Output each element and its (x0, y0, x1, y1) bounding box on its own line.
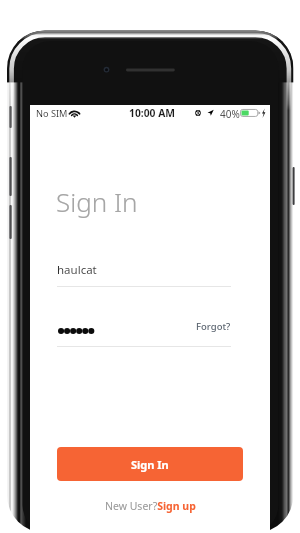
staticText: Sign In (56, 184, 138, 219)
staticText: New User?Sign up (105, 499, 196, 513)
staticText: 40% (220, 107, 240, 121)
button[interactable]: New User?Sign up (30, 496, 270, 516)
button[interactable]: Sign In (57, 447, 243, 481)
staticText: 10:00 AM (129, 106, 175, 120)
staticText: Sign In (131, 457, 169, 472)
staticText: haulcat (57, 262, 97, 278)
staticText: Forgot? (196, 320, 231, 333)
staticText: No SIM (36, 107, 68, 120)
button[interactable]: Forgot? (190, 315, 231, 337)
